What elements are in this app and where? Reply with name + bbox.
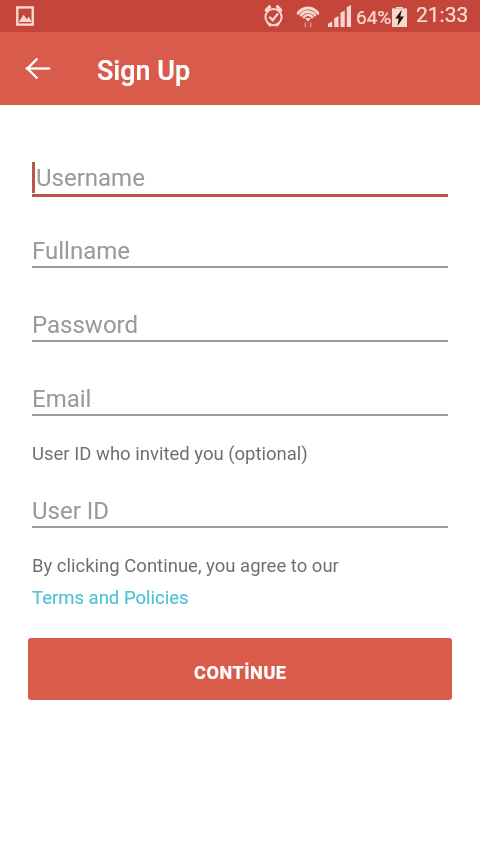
staticText: CONTİNUE: [194, 662, 287, 683]
button[interactable]: User ID: [32, 484, 448, 534]
button[interactable]: Password: [32, 298, 448, 348]
staticText: Email: [32, 385, 92, 413]
button[interactable]: CONTİNUE: [28, 638, 452, 700]
staticText: 21:33: [416, 3, 469, 28]
staticText: Password: [32, 311, 139, 339]
staticText: 64%: [356, 6, 392, 28]
staticText: User ID: [32, 497, 110, 525]
button[interactable]: Terms and Policies: [32, 587, 189, 609]
button[interactable]: Fullname: [32, 224, 448, 274]
button[interactable]: Username: [32, 151, 448, 201]
staticText: Fullname: [32, 237, 130, 265]
staticText: Username: [36, 164, 145, 192]
staticText: Sign Up: [97, 55, 191, 87]
staticText: By clicking Continue, you agree to our: [32, 555, 339, 577]
staticText: User ID who invited you (optional): [32, 443, 308, 465]
button[interactable]: Email: [32, 372, 448, 422]
button[interactable]: Back: [15, 46, 59, 90]
